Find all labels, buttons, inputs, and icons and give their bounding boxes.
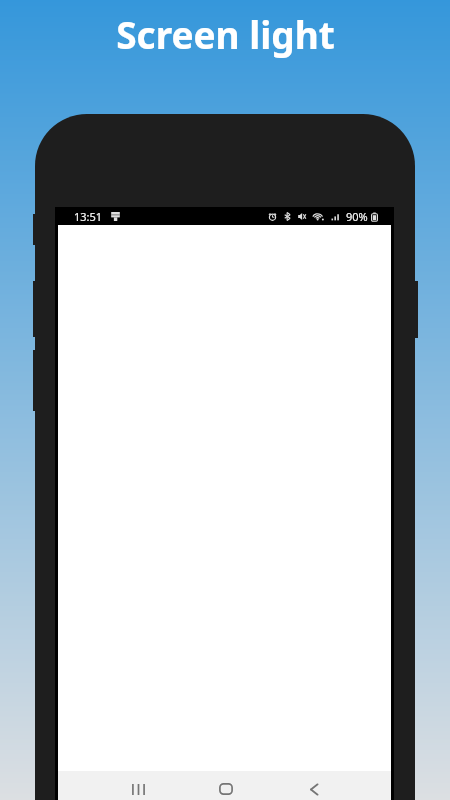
button[interactable]: Back (292, 774, 336, 800)
staticText: Screen light (116, 9, 335, 59)
button[interactable]: Recent apps (116, 774, 160, 800)
staticText: 13:51 (74, 209, 103, 224)
staticText: 90% (346, 209, 368, 224)
button[interactable]: Home (204, 774, 248, 800)
